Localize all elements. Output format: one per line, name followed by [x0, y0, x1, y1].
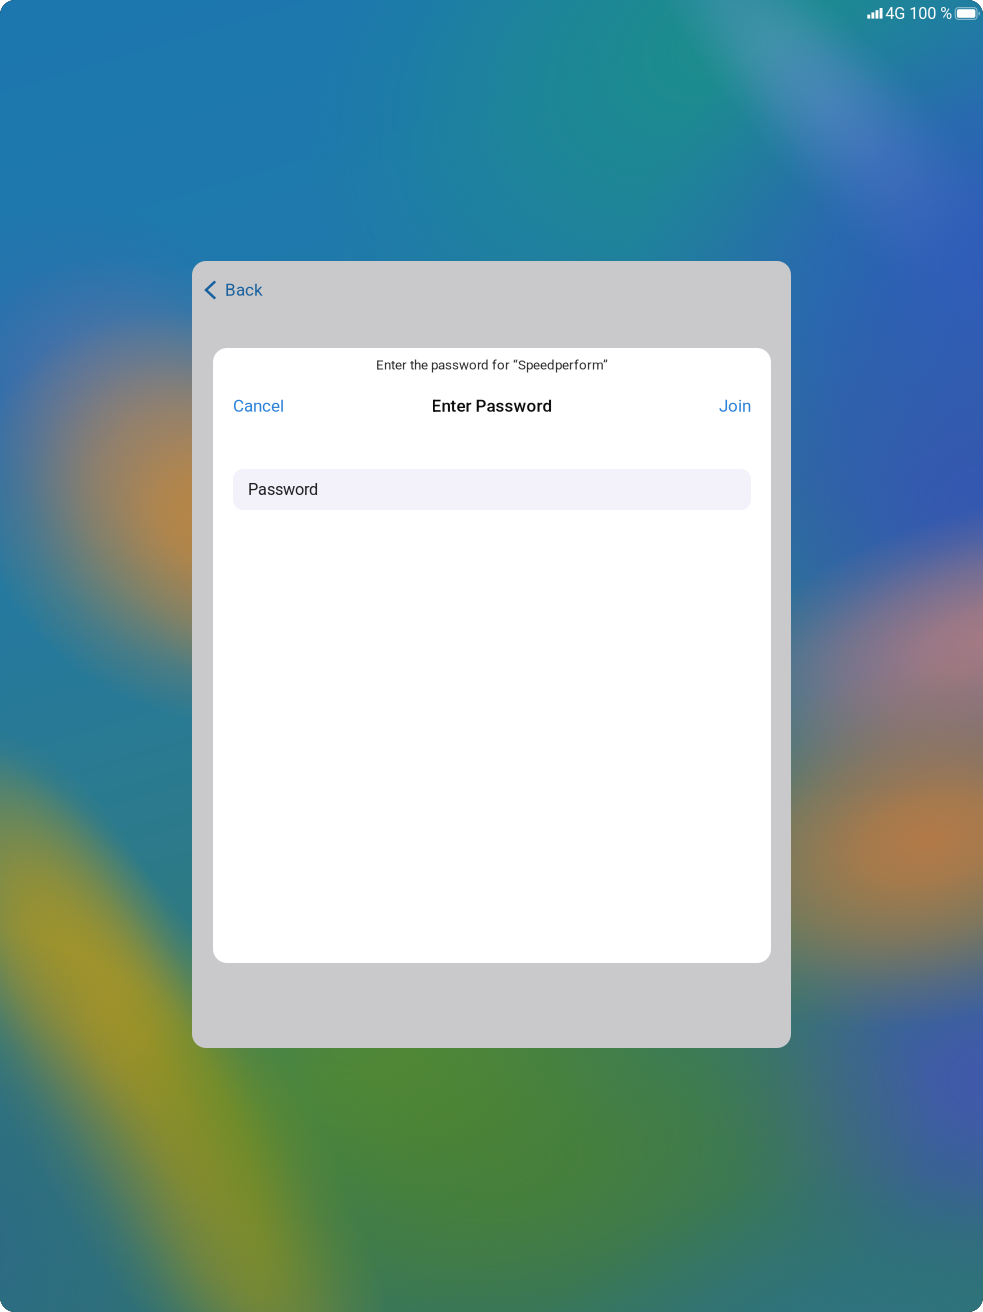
- staticText: Join: [719, 396, 751, 416]
- button[interactable]: Password: [233, 469, 751, 510]
- staticText: Cancel: [233, 396, 284, 416]
- staticText: 4G 100 %: [882, 4, 952, 23]
- staticText: Password: [248, 480, 318, 499]
- staticText: Back: [225, 280, 263, 300]
- staticText: Enter the password for “Speedperform”: [376, 357, 608, 373]
- button[interactable]: Join: [709, 390, 761, 422]
- button[interactable]: Back: [192, 270, 277, 310]
- staticText: Enter Password: [431, 396, 552, 416]
- button[interactable]: Cancel: [223, 390, 294, 422]
